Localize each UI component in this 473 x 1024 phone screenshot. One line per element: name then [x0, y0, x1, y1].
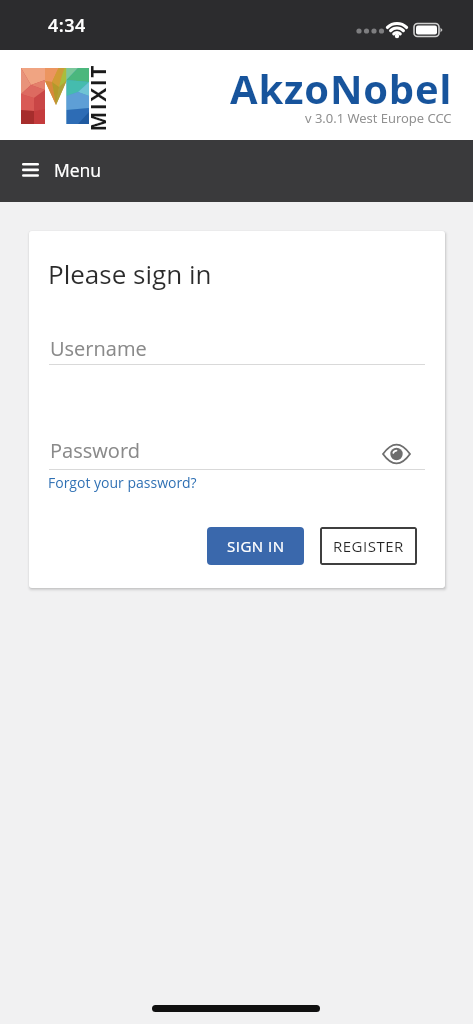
button[interactable]: Forgot your password? — [48, 473, 197, 492]
button[interactable] — [21, 68, 89, 124]
button[interactable]: Username — [49, 321, 425, 367]
button[interactable]: SIGN IN — [207, 527, 304, 565]
button[interactable]: Password — [49, 426, 425, 472]
staticText: AkzoNobel — [230, 61, 453, 115]
staticText: Password — [50, 437, 140, 464]
button[interactable]: Menu — [0, 140, 473, 202]
button[interactable]: REGISTER — [320, 527, 417, 565]
staticText: REGISTER — [333, 536, 404, 556]
staticText: Menu — [54, 158, 102, 182]
staticText: SIGN IN — [227, 536, 285, 556]
staticText: Username — [50, 335, 147, 362]
staticText: MIXIT — [83, 63, 112, 131]
staticText: 4:34 — [48, 13, 86, 38]
staticText: v 3.0.1 West Europe CCC — [305, 109, 452, 127]
staticText: Please sign in — [48, 256, 212, 291]
button[interactable] — [383, 445, 410, 463]
